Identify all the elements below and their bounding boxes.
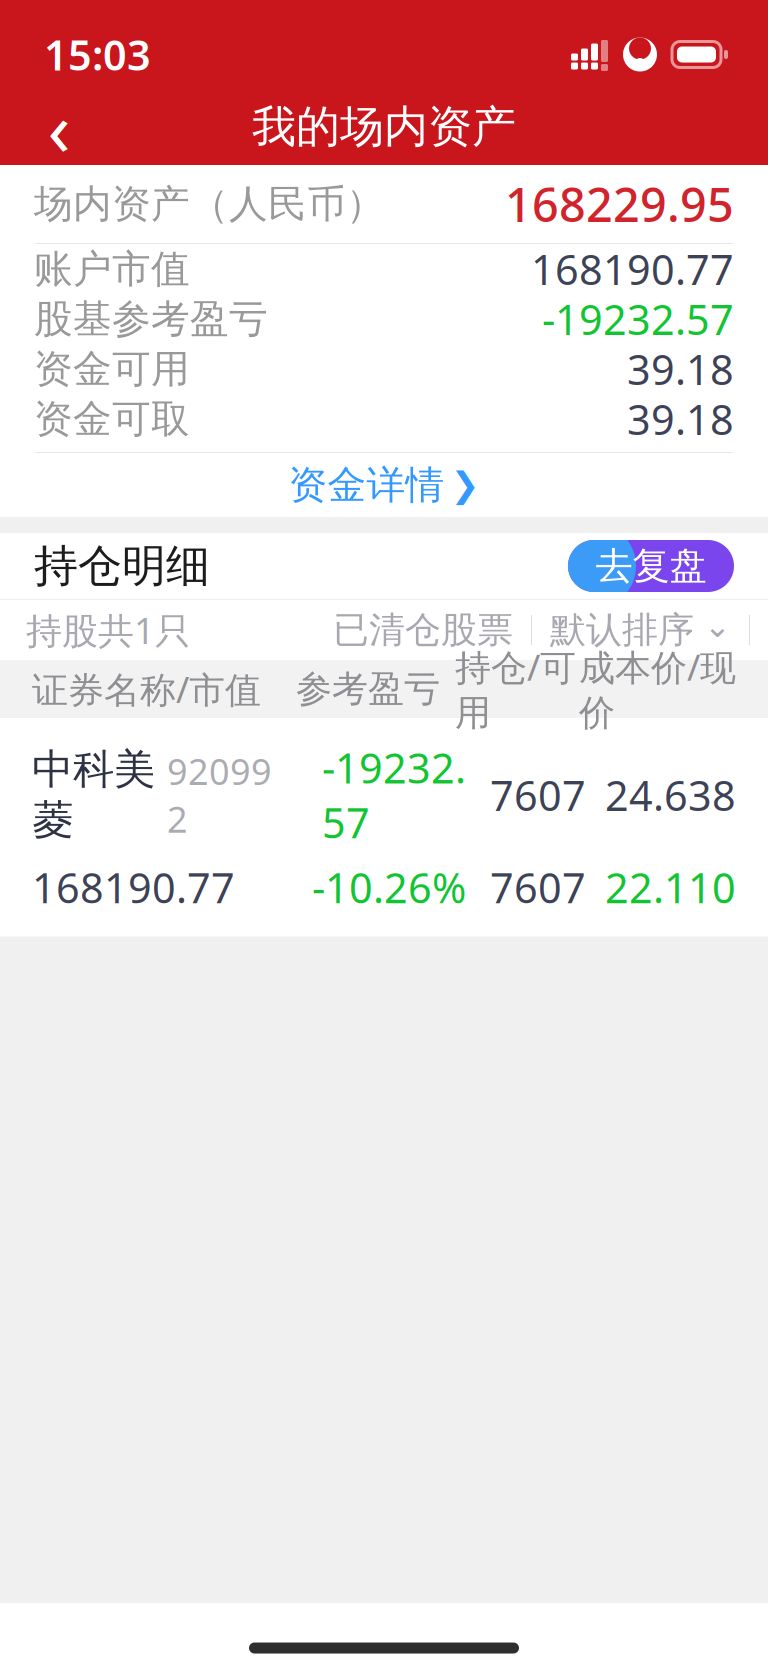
staticText: 39.18: [627, 392, 734, 446]
staticText: 去复盘: [595, 543, 706, 589]
staticText: 7607: [490, 860, 586, 915]
button[interactable]: 默认排序: [532, 602, 749, 658]
staticText: 持股共1只: [26, 606, 191, 654]
staticText: 920992: [167, 747, 272, 843]
button[interactable]: 已清仓股票: [315, 602, 531, 658]
staticText: 股基参考盈亏: [34, 295, 268, 343]
staticText: ‹: [47, 77, 70, 177]
staticText: -19232.57: [542, 292, 734, 346]
staticText: -10.26%: [312, 860, 466, 915]
staticText: 证券名称/市值: [32, 665, 261, 713]
staticText: 持仓明细: [34, 539, 210, 593]
staticText: 24.638: [605, 767, 736, 822]
staticText: ⌄: [704, 608, 731, 644]
button[interactable]: 去复盘: [568, 540, 734, 592]
button[interactable]: 中科美菱: [0, 718, 768, 937]
staticText: 参考盈亏: [296, 667, 440, 711]
staticText: 168229.95: [505, 173, 734, 235]
staticText: 默认排序: [550, 608, 694, 652]
staticText: -19232.57: [322, 740, 466, 850]
button[interactable]: 资金详情: [0, 453, 768, 517]
staticText: 账户市值: [34, 245, 190, 293]
staticText: 资金可用: [34, 345, 190, 393]
staticText: 已清仓股票: [333, 608, 513, 652]
staticText: ❯: [450, 465, 479, 505]
staticText: 资金可取: [34, 395, 190, 443]
staticText: 中科美菱: [32, 744, 155, 846]
staticText: 7607: [490, 767, 586, 822]
staticText: 持仓/可用: [455, 643, 576, 735]
staticText: 场内资产（人民币）: [34, 180, 385, 228]
staticText: 22.110: [605, 860, 736, 915]
staticText: 15:03: [44, 27, 151, 82]
staticText: 资金详情: [288, 461, 444, 509]
staticText: 我的场内资产: [252, 100, 516, 154]
button[interactable]: Back: [24, 92, 94, 162]
staticText: 成本价/现价: [579, 643, 736, 735]
staticText: 39.18: [627, 342, 734, 396]
staticText: 168190.77: [32, 860, 235, 915]
staticText: 168190.77: [531, 242, 734, 296]
